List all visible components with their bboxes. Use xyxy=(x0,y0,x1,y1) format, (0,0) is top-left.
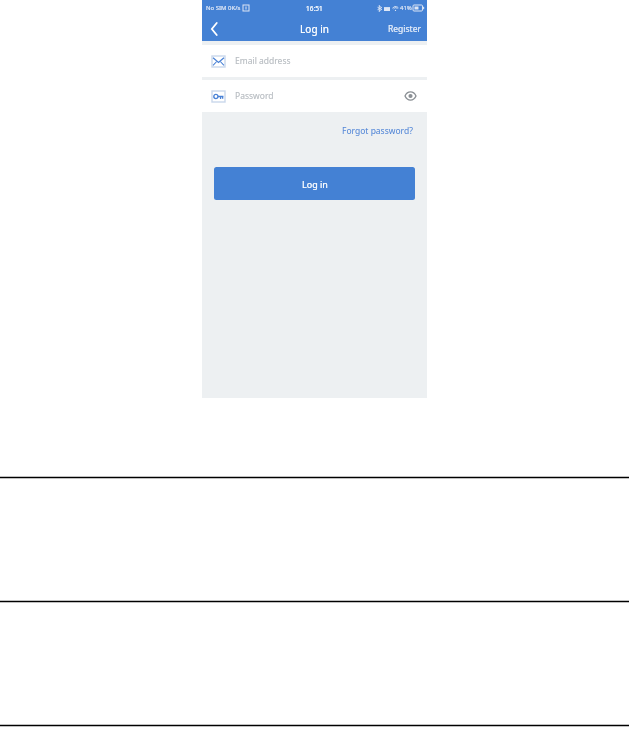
button[interactable]: Back xyxy=(202,17,226,41)
staticText: Email address xyxy=(235,55,419,67)
button[interactable]: Forgot password? xyxy=(340,123,415,139)
staticText: Register xyxy=(388,23,421,35)
button[interactable]: Password xyxy=(202,80,427,112)
staticText: Password xyxy=(235,90,401,102)
staticText: 41% xyxy=(400,4,412,12)
button[interactable]: Email address xyxy=(202,45,427,77)
staticText: No SIM 0K/s xyxy=(206,4,241,12)
button[interactable]: Log in xyxy=(214,167,415,200)
staticText: 16:51 xyxy=(306,4,323,13)
button[interactable]: Register xyxy=(382,19,427,39)
staticText: Forgot password? xyxy=(342,125,413,137)
button[interactable]: Show password xyxy=(401,87,419,105)
staticText: Log in xyxy=(302,178,328,190)
staticText: Log in xyxy=(300,22,329,36)
